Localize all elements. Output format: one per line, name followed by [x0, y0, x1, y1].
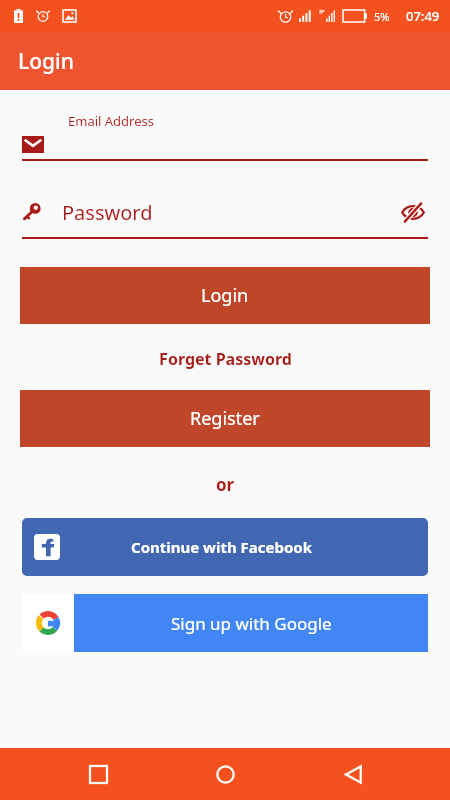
staticText: Sign up with Google	[171, 612, 332, 635]
button[interactable]: Toggle password visibility	[398, 197, 428, 227]
button[interactable]: Forget Password	[151, 346, 300, 372]
other: Email	[22, 136, 44, 153]
staticText: Login	[201, 283, 249, 308]
staticText: Email Address	[68, 112, 154, 130]
button[interactable]: Recent apps	[68, 748, 128, 800]
button[interactable]: Back	[323, 748, 383, 800]
staticText: Login	[18, 47, 74, 76]
button[interactable]: Login	[20, 267, 430, 324]
staticText: 07:49	[406, 7, 440, 25]
staticText: Register	[190, 406, 260, 431]
button[interactable]: Home	[195, 748, 255, 800]
staticText: Forget Password	[159, 348, 292, 370]
button[interactable]: Register	[20, 390, 430, 447]
button[interactable]: Continue with Facebook	[22, 518, 428, 576]
staticText: or	[216, 473, 235, 496]
staticText: Continue with Facebook	[131, 537, 313, 557]
staticText: Password	[62, 199, 153, 226]
staticText: 5%	[374, 9, 390, 24]
button[interactable]: Sign up with Google	[22, 594, 428, 652]
